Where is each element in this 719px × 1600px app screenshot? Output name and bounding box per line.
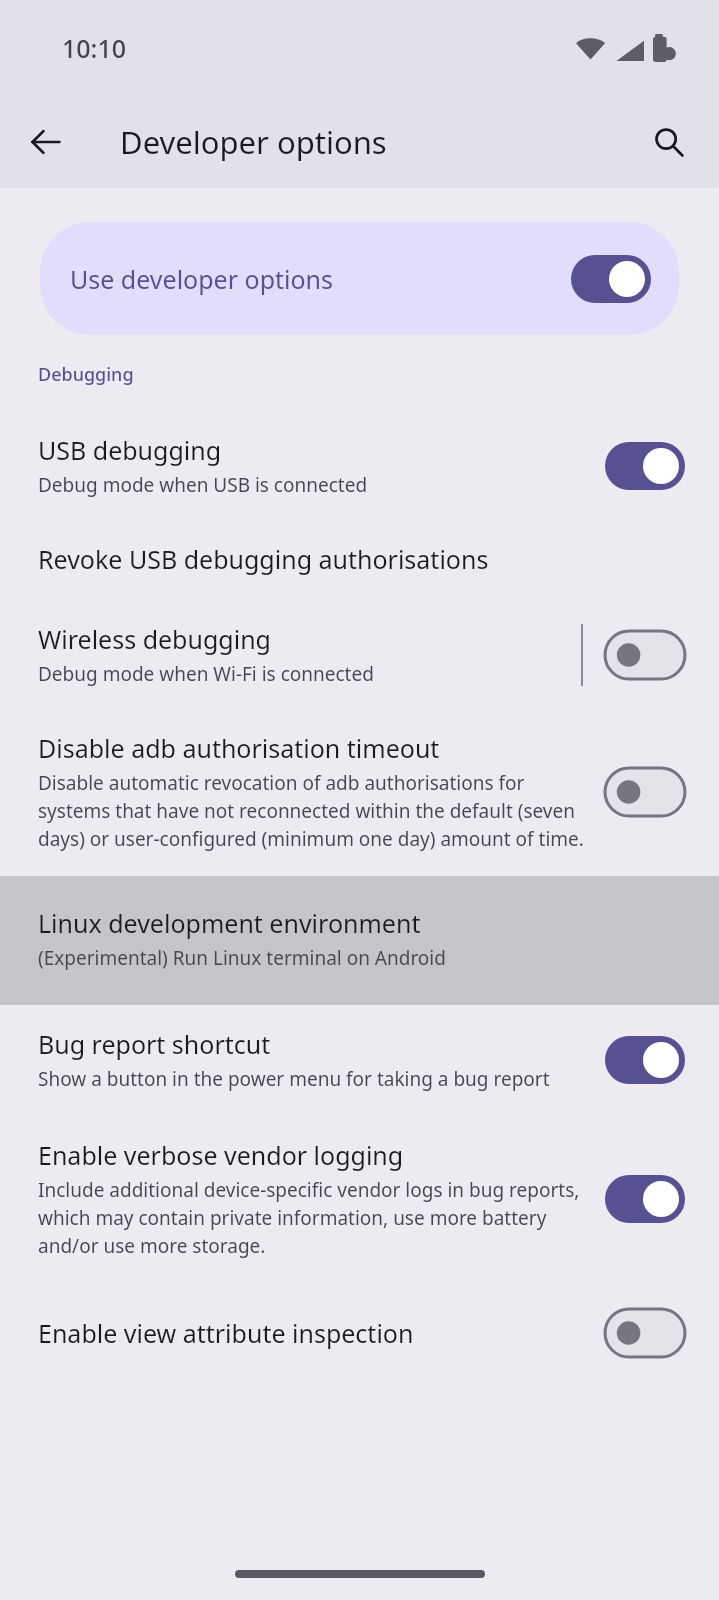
button[interactable]: Toggle on <box>605 1036 685 1084</box>
staticText: Debugging <box>38 362 134 387</box>
staticText: (Experimental) Run Linux terminal on And… <box>38 945 446 971</box>
staticText: Linux development environment <box>38 906 421 940</box>
staticText: Show a button in the power menu for taki… <box>38 1066 550 1092</box>
staticText: Disable adb authorisation timeout <box>38 731 440 765</box>
button[interactable]: Enable view attribute inspection <box>0 1283 719 1383</box>
staticText: Bug report shortcut <box>38 1027 271 1061</box>
staticText: Include additional device-specific vendo… <box>38 1177 587 1259</box>
staticText: Debug mode when USB is connected <box>38 472 368 498</box>
button[interactable]: Back <box>18 114 74 170</box>
button[interactable]: Search <box>641 114 697 170</box>
staticText: Developer options <box>120 121 387 163</box>
button[interactable]: Toggle off <box>605 631 685 679</box>
button[interactable]: Toggle on <box>605 442 685 490</box>
button[interactable]: Toggle on <box>571 255 651 303</box>
button[interactable]: Toggle on <box>605 1175 685 1223</box>
staticText: Enable view attribute inspection <box>38 1316 414 1350</box>
button[interactable]: Bug report shortcut <box>0 1005 719 1114</box>
button[interactable]: Disable adb authorisation timeout <box>0 709 719 876</box>
staticText: Revoke USB debugging authorisations <box>38 542 489 576</box>
staticText: 10:10 <box>62 31 127 65</box>
button[interactable]: Use developer options <box>40 222 679 335</box>
button[interactable]: Toggle off <box>605 768 685 816</box>
staticText: Use developer options <box>70 262 571 296</box>
staticText: Enable verbose vendor logging <box>38 1138 404 1172</box>
button[interactable]: Toggle off <box>605 1309 685 1357</box>
staticText: Wireless debugging <box>38 622 271 656</box>
button[interactable]: Linux development environment <box>0 876 719 1005</box>
staticText: USB debugging <box>38 433 222 467</box>
staticText: Disable automatic revocation of adb auth… <box>38 770 587 852</box>
button[interactable]: Wireless debugging <box>0 602 719 709</box>
button[interactable]: USB debugging <box>0 419 719 520</box>
button[interactable]: Enable verbose vendor logging <box>0 1114 719 1283</box>
button[interactable]: Revoke USB debugging authorisations <box>0 520 719 602</box>
staticText: Debug mode when Wi-Fi is connected <box>38 661 374 687</box>
